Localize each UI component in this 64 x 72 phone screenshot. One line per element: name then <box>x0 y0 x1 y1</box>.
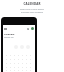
staticText: Keep track of your events and plan your … <box>20 8 44 14</box>
button[interactable]: Search <box>25 26 30 31</box>
button[interactable]: Menu <box>3 26 8 31</box>
staticText: December 2024 <box>4 37 14 39</box>
staticText: Calendar <box>4 32 15 35</box>
staticText: CALENDAR <box>23 2 41 6</box>
button[interactable]: Account <box>30 26 35 31</box>
